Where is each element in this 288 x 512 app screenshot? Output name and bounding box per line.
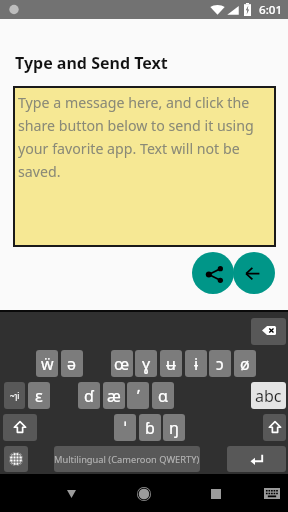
button[interactable]: Share — [192, 252, 234, 294]
button[interactable]: ə — [61, 350, 83, 377]
staticText: ˈ — [124, 417, 127, 439]
button[interactable]: Change keyboard — [4, 446, 28, 472]
button[interactable]: ẅ — [36, 350, 58, 377]
staticText: ɑ — [158, 385, 168, 407]
button[interactable]: ʉ — [160, 350, 182, 377]
button[interactable]: ~ɿi — [4, 382, 25, 409]
button[interactable]: Shift — [263, 414, 286, 441]
staticText: ŋ — [169, 417, 179, 439]
button[interactable]: Switch keyboard — [254, 476, 288, 511]
button[interactable]: æ — [103, 382, 125, 409]
button[interactable]: abc — [251, 382, 286, 409]
button[interactable]: Recents — [198, 476, 233, 511]
staticText: Type a message here, and click the share… — [18, 93, 267, 181]
button[interactable]: ø — [234, 350, 256, 377]
button[interactable]: Back — [233, 252, 275, 294]
button[interactable]: Back — [54, 476, 89, 511]
button[interactable]: Shift — [3, 414, 37, 441]
button[interactable]: ɨ — [185, 350, 207, 377]
button[interactable]: ɓ — [139, 414, 161, 441]
button[interactable]: ɗ — [78, 382, 100, 409]
button[interactable]: Backspace — [251, 318, 286, 345]
staticText: ɛ — [35, 385, 43, 407]
button[interactable]: ʼ — [127, 382, 149, 409]
button[interactable]: Home — [126, 476, 161, 511]
staticText: ɓ — [145, 417, 155, 439]
button[interactable]: ɛ — [28, 382, 50, 409]
button[interactable]: Multilingual (Cameroon QWERTY) — [54, 446, 200, 472]
staticText: œ — [114, 353, 130, 375]
staticText: ʉ — [166, 353, 176, 375]
button[interactable]: œ — [111, 350, 133, 377]
staticText: ~ɿi — [10, 390, 20, 401]
staticText: ʼ — [137, 385, 140, 407]
staticText: ɨ — [194, 353, 199, 375]
button[interactable]: ŋ — [163, 414, 185, 441]
staticText: ø — [240, 353, 250, 375]
staticText: Type and Send Text — [15, 52, 168, 74]
button[interactable]: ɑ — [152, 382, 174, 409]
staticText: abc — [255, 385, 282, 407]
button[interactable]: ɔ — [209, 350, 231, 377]
button[interactable]: Enter — [227, 446, 286, 472]
staticText: Multilingual (Cameroon QWERTY) — [54, 453, 200, 466]
staticText: ɣ — [142, 353, 151, 375]
staticText: ẅ — [41, 353, 54, 375]
staticText: ɔ — [216, 353, 224, 375]
button[interactable]: ˈ — [114, 414, 136, 441]
staticText: ə — [67, 353, 77, 375]
button[interactable]: ɣ — [135, 350, 157, 377]
staticText: ɗ — [84, 385, 94, 407]
staticText: 6:01 — [259, 2, 283, 18]
staticText: æ — [107, 385, 121, 407]
